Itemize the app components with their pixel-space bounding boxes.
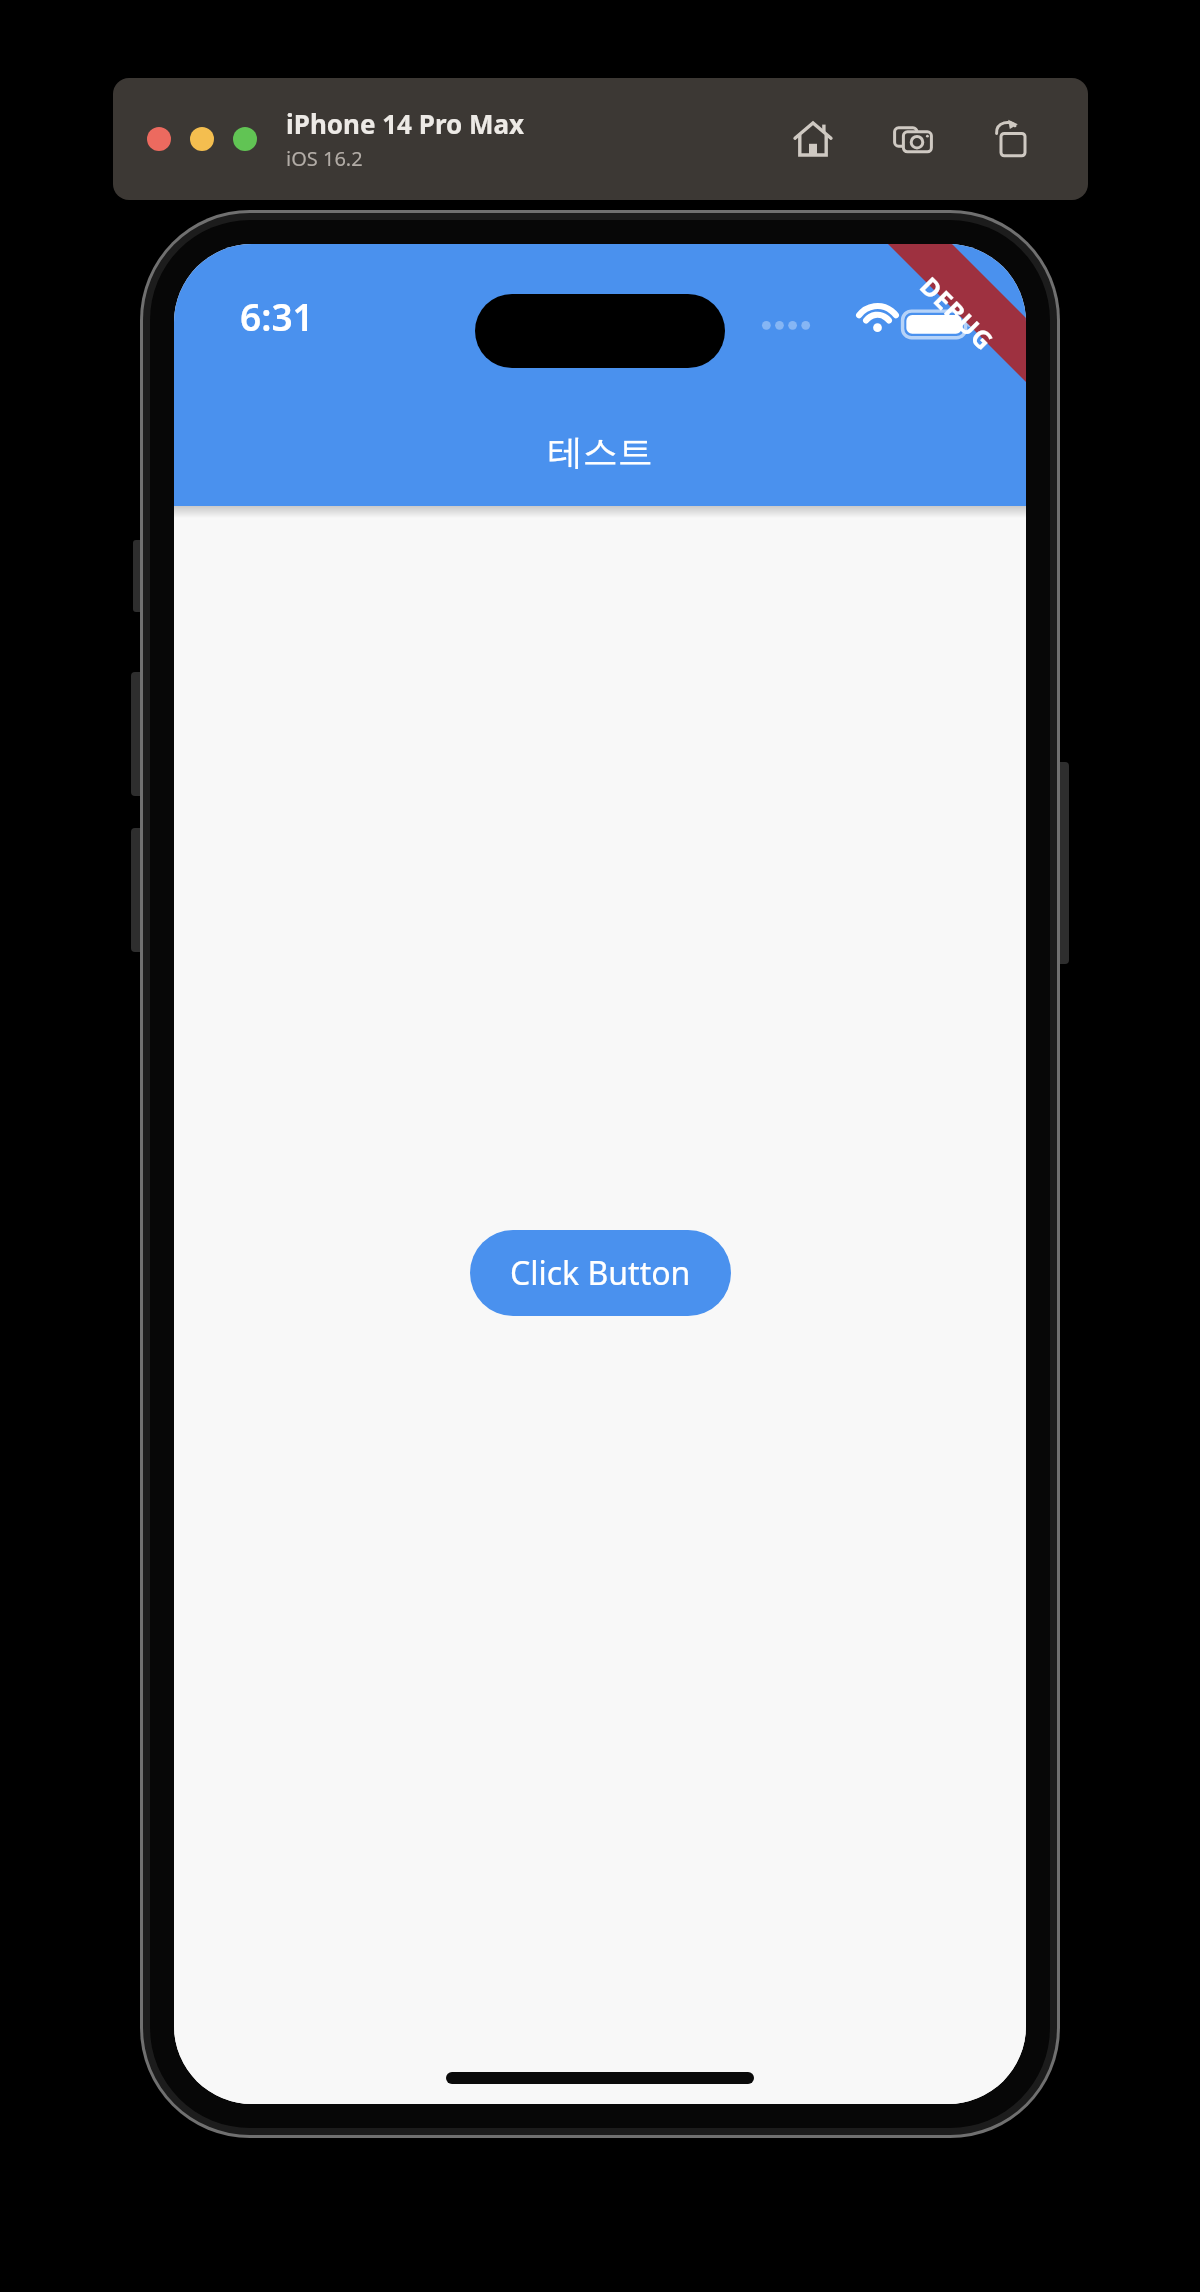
staticText: iPhone 14 Pro Max — [286, 106, 525, 141]
staticText: iOS 16.2 — [286, 145, 363, 172]
staticText: 6:31 — [240, 291, 314, 341]
button[interactable]: Minimise window — [190, 127, 214, 151]
button[interactable]: Close window — [147, 127, 171, 151]
button[interactable]: Zoom window — [233, 127, 257, 151]
button[interactable]: Click Button — [470, 1230, 731, 1316]
button[interactable]: Rotate — [984, 110, 1042, 168]
staticText: DEBUG — [913, 269, 1002, 357]
staticText: Click Button — [510, 1251, 691, 1295]
staticText: 테스트 — [548, 430, 653, 474]
button[interactable]: Screenshot — [884, 110, 942, 168]
button[interactable]: Home — [784, 110, 842, 168]
